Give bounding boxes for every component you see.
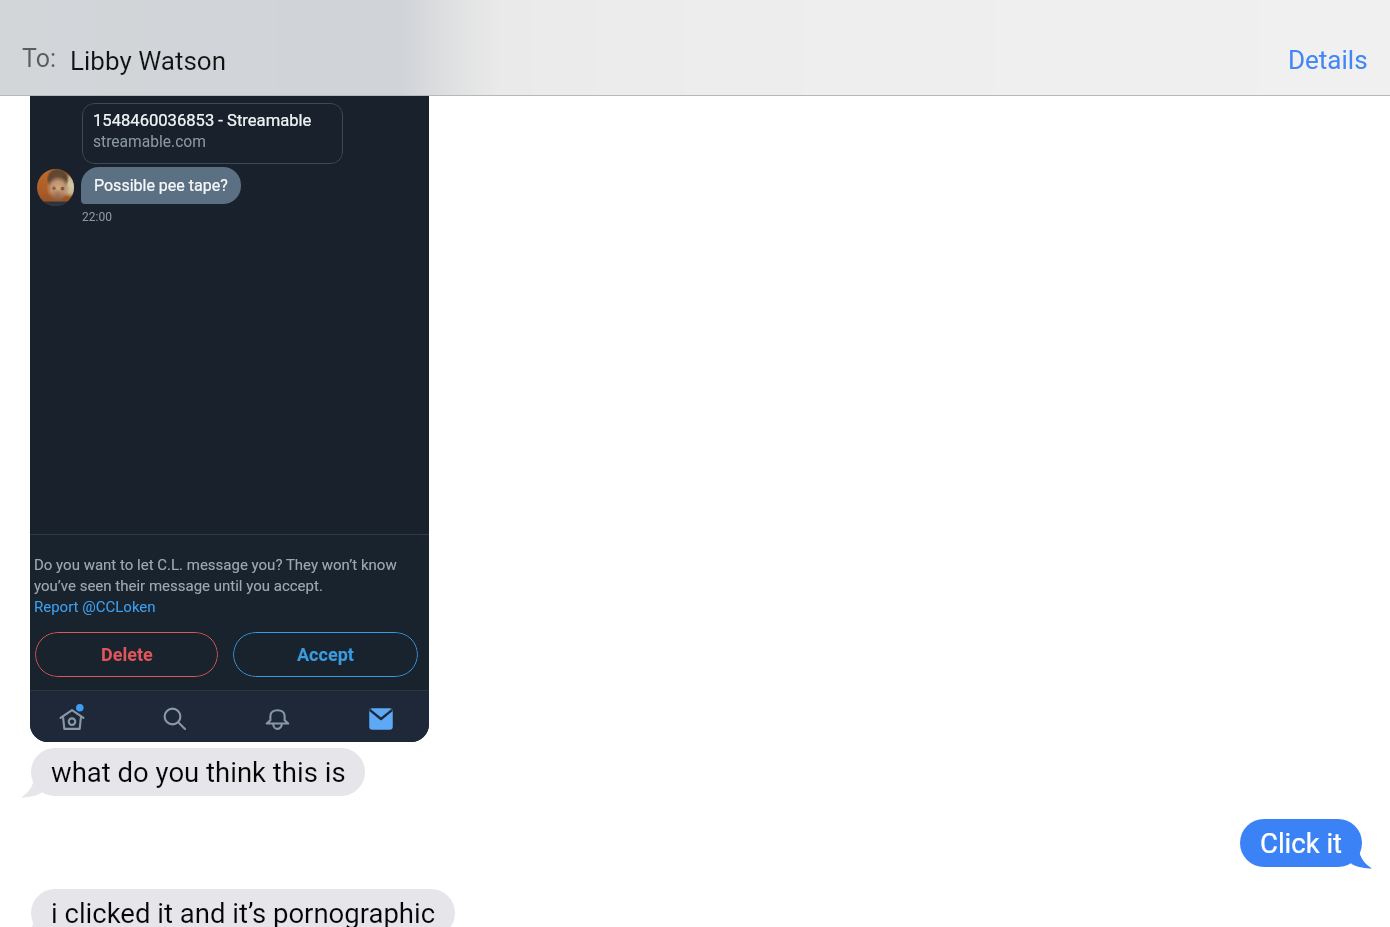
staticText: Do you want to let C.L. message you? The… [34, 556, 397, 574]
staticText: Possible pee tape? [94, 176, 228, 195]
staticText: Delete [101, 644, 153, 665]
staticText: Accept [297, 644, 354, 665]
button[interactable]: Profile photo [37, 169, 74, 206]
button[interactable]: Details [1279, 35, 1377, 85]
button[interactable]: Delete [35, 632, 218, 677]
staticText: i clicked it and it’s pornographic [51, 897, 436, 927]
button[interactable]: Possible pee tape? [81, 167, 241, 204]
button[interactable]: Report @CCLoken [34, 598, 156, 616]
staticText: Click it [1260, 827, 1343, 859]
button[interactable]: Accept [233, 632, 418, 677]
staticText: what do you think this is [51, 756, 346, 788]
button[interactable]: Notifications [252, 691, 303, 742]
staticText: Libby Watson [70, 46, 227, 76]
button[interactable]: Click it [1240, 819, 1362, 867]
button[interactable]: Messages [355, 691, 406, 742]
staticText: To: [22, 44, 57, 73]
staticText: 22:00 [82, 210, 112, 224]
button[interactable]: 1548460036853 - Streamable [82, 103, 343, 164]
button[interactable]: Home [46, 691, 97, 742]
button[interactable]: Search [149, 691, 200, 742]
button[interactable]: what do you think this is [31, 748, 365, 796]
staticText: you’ve seen their message until you acce… [34, 577, 323, 595]
staticText: streamable.com [93, 133, 206, 151]
staticText: 1548460036853 - Streamable [93, 111, 312, 130]
button[interactable]: i clicked it and it’s pornographic [31, 889, 455, 927]
staticText: Details [1288, 45, 1368, 75]
